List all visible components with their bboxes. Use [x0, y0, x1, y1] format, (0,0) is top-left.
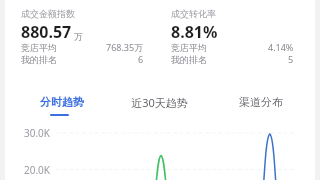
staticText: 5	[288, 53, 294, 65]
staticText: 30.0K	[24, 126, 51, 140]
staticText: 渠道分布	[239, 95, 283, 109]
staticText: 成交转化率	[171, 8, 216, 19]
staticText: 20.0K	[24, 163, 51, 177]
staticText: 6	[138, 53, 144, 65]
staticText: 分时趋势	[40, 95, 84, 109]
staticText: 4.14%	[268, 41, 294, 53]
button[interactable]: 近30天趋势	[126, 95, 192, 117]
staticText: 成交金额指数	[21, 8, 75, 19]
staticText: 我的排名	[21, 54, 57, 65]
staticText: 880.57	[21, 21, 72, 43]
staticText: 我的排名	[171, 54, 207, 65]
button[interactable]: 分时趋势	[30, 95, 94, 116]
staticText: 近30天趋势	[131, 95, 188, 110]
staticText: 768.35万	[106, 41, 144, 53]
staticText: 8.81%	[171, 21, 218, 43]
staticText: 竞店平均	[171, 42, 207, 53]
button[interactable]: 渠道分布	[229, 95, 293, 116]
staticText: 万	[74, 31, 83, 42]
staticText: 竞店平均	[21, 42, 57, 53]
